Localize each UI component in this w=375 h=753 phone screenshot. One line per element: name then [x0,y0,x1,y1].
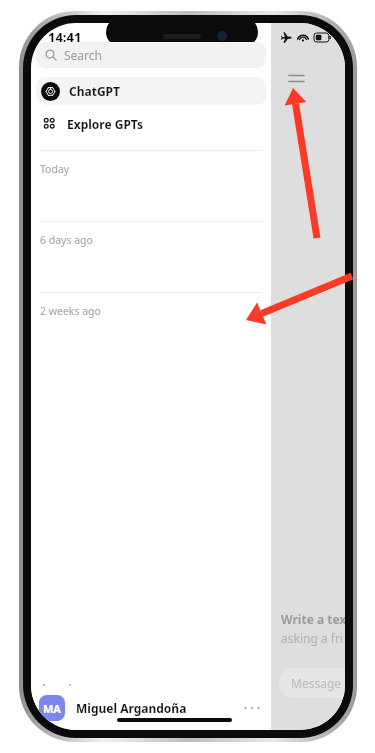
staticText: Explore GPTs [67,116,144,132]
staticText: ChatGPT [69,83,120,99]
staticText: Search [64,47,102,63]
staticText: 2 weeks ago [40,304,101,318]
button[interactable]: Explore GPTs [36,111,266,137]
staticText: Recetas fitness con pollo [40,704,188,720]
button[interactable]: MA [31,686,271,730]
button[interactable]: More options [241,697,263,719]
button[interactable]: Search [36,42,266,68]
button[interactable]: Open menu [283,65,309,91]
staticText: Write a tex [281,611,345,627]
staticText: 4 weeks ago [40,681,101,695]
staticText: Message [291,675,342,691]
staticText: Today [40,162,70,176]
staticText: MA [43,701,61,716]
button[interactable]: Message [279,668,345,698]
staticText: 14:41 [48,28,82,46]
staticText: asking a fri [281,630,343,646]
staticText: Miguel Argandoña [76,700,187,716]
button[interactable]: ChatGPT [36,77,266,105]
staticText: 6 days ago [40,233,93,247]
